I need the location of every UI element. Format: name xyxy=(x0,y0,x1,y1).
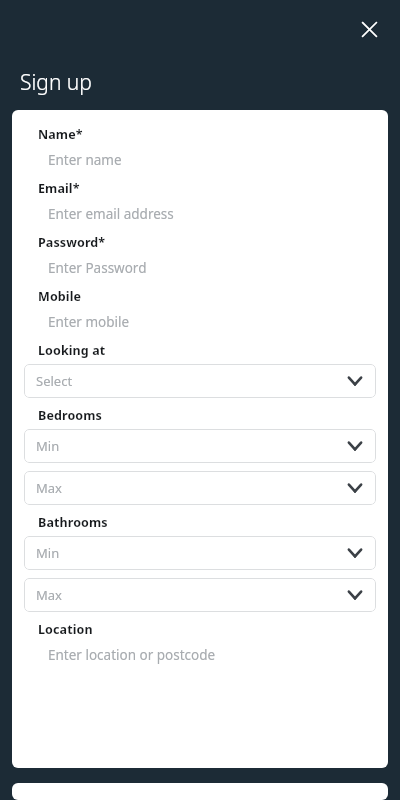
staticText: Enter location or postcode xyxy=(48,646,216,664)
button[interactable]: Max xyxy=(24,578,376,612)
staticText: Enter name xyxy=(48,151,122,169)
staticText: Password* xyxy=(38,234,106,251)
staticText: Enter mobile xyxy=(48,313,130,331)
button[interactable]: Min xyxy=(24,429,376,463)
button[interactable]: Enter location or postcode xyxy=(24,638,376,672)
button[interactable]: Select xyxy=(24,364,376,398)
button[interactable]: Min xyxy=(24,536,376,570)
staticText: Max xyxy=(36,586,346,604)
button[interactable]: Close xyxy=(351,11,387,47)
button[interactable] xyxy=(12,783,388,800)
staticText: Bedrooms xyxy=(38,407,102,424)
staticText: Mobile xyxy=(38,288,82,305)
button[interactable]: Enter email address xyxy=(24,197,376,231)
button[interactable]: Enter Password xyxy=(24,251,376,285)
button[interactable]: Max xyxy=(24,471,376,505)
staticText: Email* xyxy=(38,180,80,197)
staticText: Enter email address xyxy=(48,205,174,223)
staticText: Max xyxy=(36,479,346,497)
staticText: Sign up xyxy=(20,68,92,97)
staticText: Enter Password xyxy=(48,259,147,277)
staticText: Min xyxy=(36,437,346,455)
staticText: Min xyxy=(36,544,346,562)
staticText: Name* xyxy=(38,126,83,143)
staticText: Location xyxy=(38,621,93,638)
staticText: Select xyxy=(36,372,346,390)
button[interactable]: Enter name xyxy=(24,143,376,177)
staticText: Bathrooms xyxy=(38,514,108,531)
button[interactable]: Enter mobile xyxy=(24,305,376,339)
staticText: Looking at xyxy=(38,342,106,359)
